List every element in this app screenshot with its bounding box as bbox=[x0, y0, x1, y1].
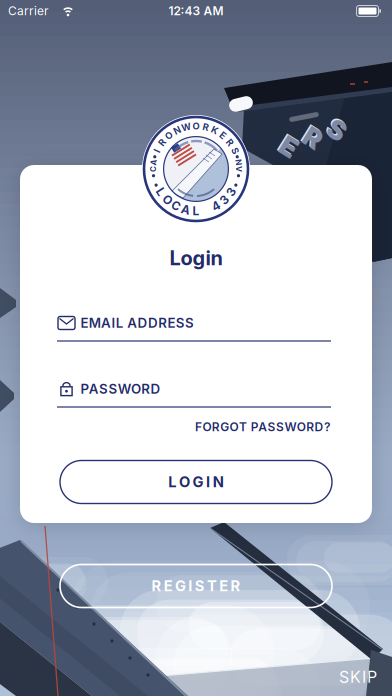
staticText: L bbox=[157, 185, 164, 199]
staticText: N bbox=[235, 158, 241, 167]
staticText: 3 bbox=[220, 193, 228, 207]
staticText: E bbox=[279, 130, 296, 161]
staticText: K bbox=[211, 125, 218, 136]
staticText: R bbox=[303, 121, 321, 152]
staticText: O bbox=[165, 130, 172, 141]
staticText: O bbox=[163, 193, 172, 207]
staticText: 3 bbox=[227, 185, 235, 199]
staticText: N bbox=[174, 125, 181, 136]
button[interactable]: FORGOT PASSWORD? bbox=[57, 418, 331, 436]
staticText: L bbox=[192, 204, 199, 218]
staticText: 4 bbox=[212, 199, 220, 213]
staticText: FORGOT PASSWORD? bbox=[195, 420, 331, 434]
button[interactable]: PASSWORD bbox=[58, 374, 334, 404]
staticText: S bbox=[232, 145, 238, 156]
staticText: REGISTER bbox=[151, 577, 241, 595]
staticText: Login bbox=[169, 246, 222, 270]
button[interactable]: SKIP bbox=[339, 668, 377, 686]
staticText: 12:43 AM bbox=[168, 4, 223, 18]
staticText: A bbox=[181, 203, 190, 217]
staticText: R bbox=[304, 122, 322, 154]
staticText: R bbox=[159, 137, 165, 148]
staticText: S bbox=[328, 114, 346, 146]
button[interactable]: LOGIN bbox=[60, 460, 332, 503]
staticText: S bbox=[327, 113, 345, 144]
staticText: Carrier bbox=[8, 4, 49, 18]
staticText: E bbox=[220, 130, 226, 141]
staticText: R bbox=[203, 122, 209, 133]
button[interactable]: EMAIL ADDRESS bbox=[58, 308, 334, 338]
staticText: E bbox=[280, 131, 297, 163]
staticText: O bbox=[192, 120, 199, 131]
staticText: SKIP bbox=[339, 668, 377, 686]
staticText: A bbox=[150, 158, 156, 167]
staticText: V bbox=[236, 164, 242, 174]
staticText: PASSWORD bbox=[80, 381, 161, 397]
staticText: R bbox=[227, 137, 233, 148]
staticText: C bbox=[150, 164, 156, 174]
staticText: LOGIN bbox=[168, 473, 224, 491]
staticText: I bbox=[155, 145, 158, 156]
button[interactable]: REGISTER bbox=[60, 564, 332, 607]
staticText: C bbox=[171, 199, 180, 213]
staticText: EMAIL ADDRESS bbox=[80, 315, 194, 331]
staticText: W bbox=[181, 122, 191, 133]
